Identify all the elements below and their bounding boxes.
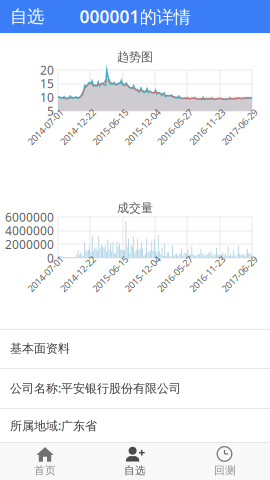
staticText: 4000000 xyxy=(5,223,54,239)
staticText: 2014-07-01 xyxy=(22,121,68,133)
button[interactable]: 首页 xyxy=(0,443,90,480)
staticText: 000001的详情 xyxy=(79,5,190,28)
staticText: 20 xyxy=(40,62,54,78)
button[interactable]: 基本面资料 xyxy=(0,329,270,368)
staticText: 2015-12-04 xyxy=(119,268,165,280)
staticText: 5 xyxy=(47,103,54,119)
staticText: 2016-05-27 xyxy=(152,268,198,280)
staticText: 6000000 xyxy=(5,209,54,225)
staticText: 基本面资料 xyxy=(10,341,70,356)
staticText: 自选 xyxy=(10,6,44,27)
staticText: 所属地域:广东省 xyxy=(10,417,97,433)
staticText: 2015-06-15 xyxy=(87,268,133,280)
staticText: 10 xyxy=(40,89,54,105)
staticText: 回测 xyxy=(214,464,236,477)
staticText: 2014-12-22 xyxy=(55,268,101,280)
staticText: 首页 xyxy=(34,464,56,477)
staticText: 15 xyxy=(40,76,54,92)
staticText: 2016-11-23 xyxy=(184,268,230,280)
button[interactable]: 所属地域:广东省 xyxy=(0,408,270,443)
staticText: 自选 xyxy=(124,464,146,477)
staticText: 2016-11-23 xyxy=(184,121,230,133)
button[interactable]: 公司名称:平安银行股份有限公司 xyxy=(0,368,270,408)
staticText: 2015-06-15 xyxy=(87,121,133,133)
staticText: 2015-12-04 xyxy=(119,121,165,133)
staticText: 2014-12-22 xyxy=(55,121,101,133)
staticText: 趋势图 xyxy=(117,50,153,64)
button[interactable]: 自选 xyxy=(0,0,54,33)
staticText: 成交量 xyxy=(117,201,153,215)
staticText: 2000000 xyxy=(5,236,54,252)
staticText: 2017-06-29 xyxy=(216,121,262,133)
button[interactable]: 回测 xyxy=(180,443,270,480)
button[interactable]: 自选 xyxy=(90,443,180,480)
staticText: 2017-06-29 xyxy=(216,268,262,280)
staticText: 2016-05-27 xyxy=(152,121,198,133)
staticText: 0 xyxy=(47,250,54,266)
staticText: 公司名称:平安银行股份有限公司 xyxy=(10,380,181,396)
staticText: 2014-07-01 xyxy=(22,268,68,280)
